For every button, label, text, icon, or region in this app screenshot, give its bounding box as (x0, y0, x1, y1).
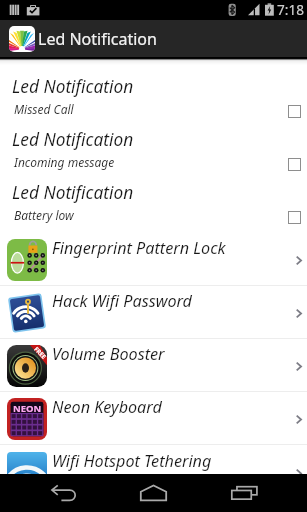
staticText: Fingerprint Pattern Lock (52, 237, 226, 259)
button[interactable]: FREE (0, 339, 307, 392)
staticText: Hack Wifi Password (52, 290, 192, 312)
button[interactable]: Fingerprint Pattern Lock (0, 233, 307, 286)
button[interactable]: Back (24, 474, 104, 512)
button[interactable]: Home (113, 474, 193, 512)
button[interactable]: NEON (0, 392, 307, 445)
staticText: Led Notification (38, 28, 157, 50)
staticText: Battery low (14, 207, 74, 223)
staticText: Missed Call (14, 101, 74, 117)
staticText: Led Notification (12, 75, 134, 99)
staticText: Wifi Hotspot Tethering (52, 450, 212, 472)
staticText: NEON (13, 402, 42, 415)
staticText: Neon Keyboard (52, 396, 162, 418)
staticText: Volume Booster (52, 343, 165, 365)
button[interactable]: Led Notification (0, 74, 307, 127)
staticText: Led Notification (12, 128, 134, 152)
staticText: 7:18 (277, 0, 304, 19)
button[interactable]: Recent apps (204, 474, 284, 512)
button[interactable]: Led Notification (0, 180, 307, 233)
staticText: FREE (32, 345, 48, 361)
staticText: Incoming message (14, 154, 115, 170)
button[interactable]: Wifi Hotspot Tethering (0, 446, 307, 499)
button[interactable]: Hack Wifi Password (0, 286, 307, 339)
staticText: Led Notification (12, 181, 134, 205)
button[interactable]: Led Notification (0, 127, 307, 180)
